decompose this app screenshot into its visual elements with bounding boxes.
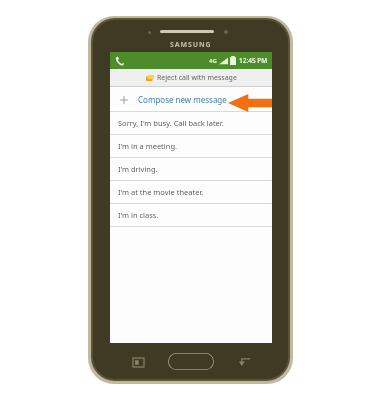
staticText: SAMSUNG (170, 40, 212, 50)
staticText: Sorry, I'm busy. Call back later. (118, 118, 224, 128)
button[interactable]: I'm at the movie theater. (110, 181, 272, 203)
staticText: I'm in class. (118, 210, 159, 220)
button[interactable]: I'm driving. (110, 158, 272, 180)
staticText: I'm in a meeting. (118, 141, 178, 151)
staticText: 12:45 PM (239, 56, 268, 65)
staticText: 4G (209, 57, 217, 65)
button[interactable]: I'm in class. (110, 204, 272, 226)
button[interactable]: Recent apps (130, 355, 146, 369)
staticText: Reject call with message (157, 73, 237, 83)
button[interactable]: Home (168, 353, 214, 370)
staticText: Compose new message (138, 94, 227, 105)
button[interactable]: Compose new message (110, 87, 272, 111)
staticText: I'm at the movie theater. (118, 187, 204, 197)
button[interactable]: Back (236, 355, 252, 369)
button[interactable]: I'm in a meeting. (110, 135, 272, 157)
button[interactable]: Sorry, I'm busy. Call back later. (110, 112, 272, 134)
staticText: I'm driving. (118, 164, 158, 174)
